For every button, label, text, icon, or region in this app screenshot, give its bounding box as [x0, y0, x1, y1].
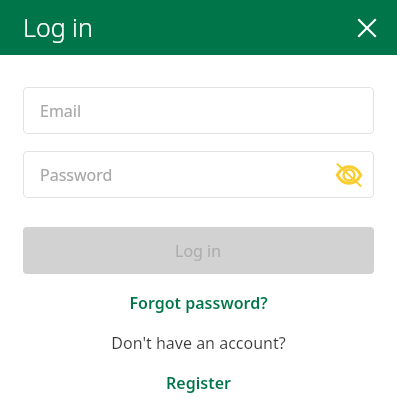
button[interactable]: Log in [23, 227, 374, 274]
staticText: Don't have an account? [111, 332, 286, 354]
button[interactable]: Email [23, 87, 374, 134]
button[interactable]: Password [23, 151, 374, 198]
staticText: Email [40, 100, 82, 122]
button[interactable]: Forgot password? [0, 290, 397, 316]
staticText: Log in [23, 10, 93, 44]
staticText: Register [166, 372, 231, 394]
button[interactable]: Show password [331, 157, 367, 193]
button[interactable]: Close [347, 8, 387, 48]
staticText: Log in [175, 240, 222, 262]
staticText: Password [40, 164, 113, 186]
staticText: Forgot password? [129, 292, 268, 314]
button[interactable]: Register [0, 370, 397, 396]
